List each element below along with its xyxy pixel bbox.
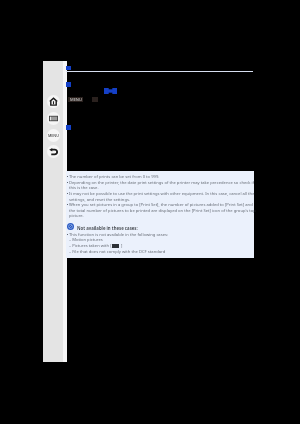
button[interactable]: Menu xyxy=(47,129,60,142)
staticText: Depending on the printer, the date print… xyxy=(69,180,255,186)
staticText: – Pictures taken with [ ] xyxy=(69,243,123,249)
staticText: It may not be possible to use the print … xyxy=(69,191,255,197)
button[interactable]: Home xyxy=(47,95,60,108)
staticText: the total number of pictures to be print… xyxy=(69,208,256,214)
staticText: – File that does not comply with the DCF… xyxy=(69,249,166,255)
staticText: Not available in these cases: xyxy=(77,225,138,231)
staticText: MENU xyxy=(48,133,59,138)
staticText: settings, and reset the settings. xyxy=(69,197,131,203)
button[interactable]: Back xyxy=(47,145,60,158)
staticText: – Motion pictures xyxy=(69,237,103,243)
staticText: this is the case. xyxy=(69,185,99,191)
staticText: This function is not available in the fo… xyxy=(69,232,169,238)
button[interactable]: MENU xyxy=(68,97,83,102)
staticText: When you set pictures in a group to [Pri… xyxy=(69,202,253,208)
staticText: The number of prints can be set from 0 t… xyxy=(69,174,160,180)
staticText: MENU xyxy=(70,97,82,102)
button[interactable]: Contents xyxy=(47,112,60,125)
staticText: picture. xyxy=(69,213,84,219)
